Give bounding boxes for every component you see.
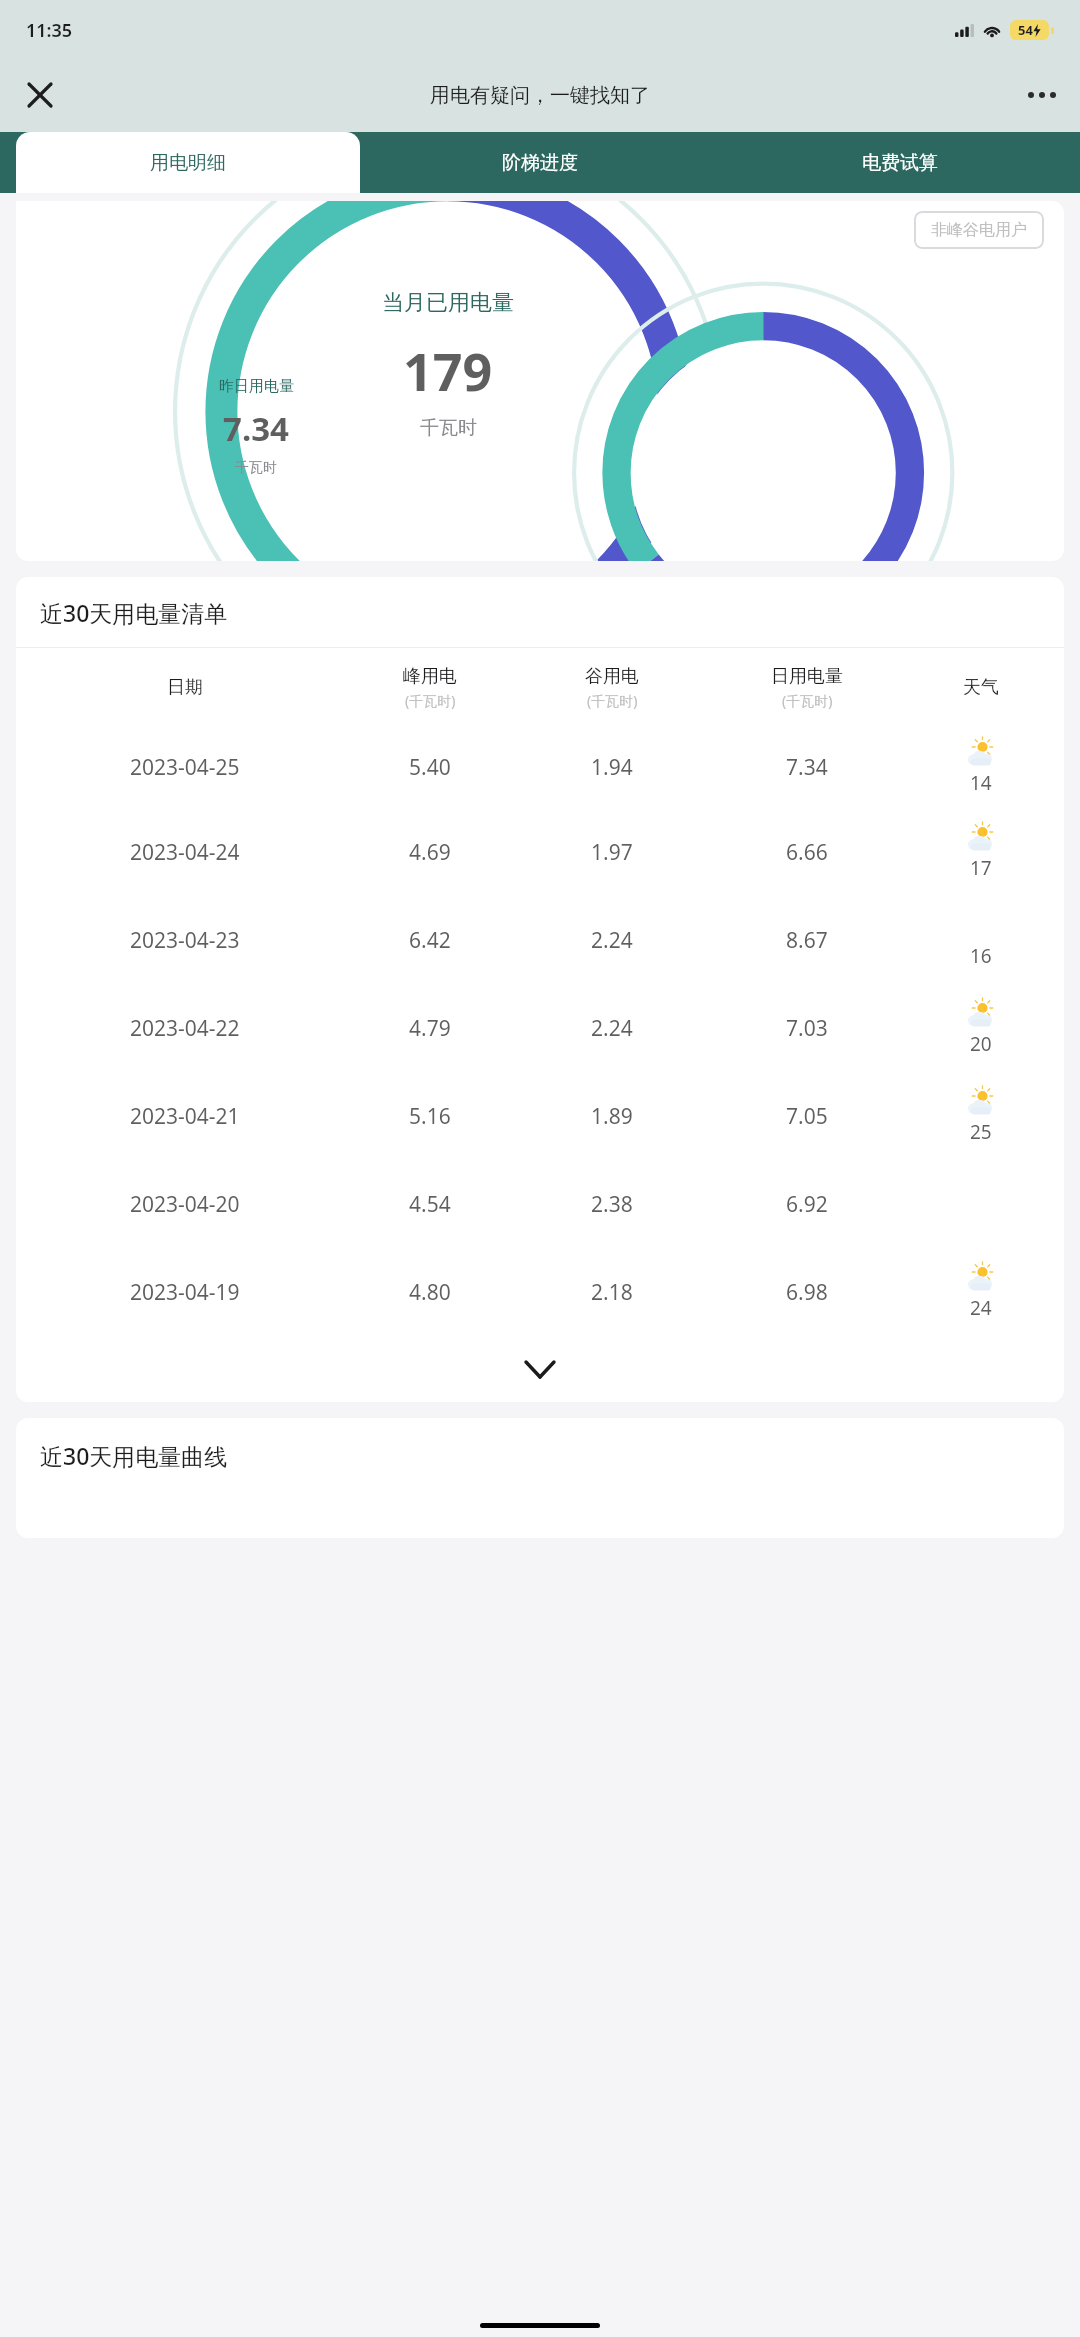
staticText: 7.34 [786, 753, 828, 782]
staticText: 6.98 [786, 1278, 828, 1307]
staticText: 千瓦时 [420, 416, 477, 440]
staticText: 1.97 [591, 838, 633, 867]
button[interactable]: 用电明细 [16, 132, 360, 193]
staticText: 非峰谷电用户 [931, 220, 1027, 240]
staticText: 日用电量 [771, 665, 843, 688]
staticText: 8.67 [786, 926, 828, 955]
staticText: 近30天用电量清单 [40, 597, 228, 628]
staticText: 7.03 [786, 1014, 828, 1043]
staticText: 2023-04-23 [130, 926, 240, 955]
staticText: 54 [1018, 21, 1033, 39]
button[interactable]: 电费试算 [720, 132, 1080, 193]
button[interactable]: 2023-04-19 [30, 1248, 1050, 1336]
staticText: 5.40 [409, 753, 451, 782]
staticText: 谷用电 [585, 665, 639, 688]
staticText: 用电明细 [150, 151, 226, 175]
staticText: 4.69 [409, 838, 451, 867]
staticText: 2023-04-19 [130, 1278, 240, 1307]
staticText: 4.79 [409, 1014, 451, 1043]
staticText: 11:35 [26, 18, 73, 43]
button[interactable]: Close [18, 73, 62, 117]
button[interactable]: 2023-04-24 [30, 808, 1050, 896]
button[interactable]: 2023-04-21 [30, 1072, 1050, 1160]
staticText: 昨日用电量 [219, 377, 294, 396]
staticText: 24 [970, 1295, 992, 1321]
staticText: 2023-04-22 [130, 1014, 240, 1043]
staticText: 电费试算 [862, 151, 938, 175]
staticText: 25 [970, 1119, 992, 1145]
staticText: 17 [970, 855, 992, 881]
button[interactable]: 2023-04-25 [30, 726, 1050, 808]
button[interactable]: 2023-04-22 [30, 984, 1050, 1072]
staticText: 6.66 [786, 838, 828, 867]
staticText: 近30天用电量曲线 [40, 1440, 228, 1471]
button[interactable]: 2023-04-20 [30, 1160, 1050, 1248]
button[interactable]: More options [1020, 73, 1064, 117]
staticText: 4.54 [409, 1190, 451, 1219]
button[interactable]: 非峰谷电用户 [931, 220, 1027, 240]
staticText: 2.24 [591, 926, 633, 955]
staticText: (千瓦时) [405, 691, 456, 710]
staticText: 14 [970, 770, 992, 796]
staticText: 6.42 [409, 926, 451, 955]
staticText: 4.80 [409, 1278, 451, 1307]
staticText: (千瓦时) [782, 691, 833, 710]
staticText: 5.16 [409, 1102, 451, 1131]
staticText: 用电有疑问，一键找知了 [430, 83, 650, 108]
staticText: 2023-04-25 [130, 753, 240, 782]
staticText: 阶梯进度 [502, 151, 578, 175]
staticText: 2.18 [591, 1278, 633, 1307]
staticText: 1.89 [591, 1102, 633, 1131]
staticText: 日期 [167, 676, 203, 699]
staticText: 2023-04-21 [130, 1102, 240, 1131]
staticText: 7.05 [786, 1102, 828, 1131]
staticText: 16 [970, 943, 992, 969]
staticText: 7.34 [223, 406, 289, 451]
staticText: 2.38 [591, 1190, 633, 1219]
staticText: 1.94 [591, 753, 633, 782]
staticText: 6.92 [786, 1190, 828, 1219]
staticText: 179 [403, 335, 493, 406]
staticText: 当月已用电量 [382, 289, 514, 317]
button[interactable]: 阶梯进度 [360, 132, 720, 193]
staticText: 千瓦时 [235, 459, 277, 477]
staticText: (千瓦时) [587, 691, 638, 710]
staticText: 20 [970, 1031, 992, 1057]
staticText: 2023-04-24 [130, 838, 240, 867]
button[interactable]: 2023-04-23 [30, 896, 1050, 984]
staticText: 2023-04-20 [130, 1190, 240, 1219]
staticText: 2.24 [591, 1014, 633, 1043]
staticText: 峰用电 [403, 665, 457, 688]
staticText: 天气 [963, 676, 999, 699]
button[interactable]: Expand list [16, 1336, 1064, 1402]
